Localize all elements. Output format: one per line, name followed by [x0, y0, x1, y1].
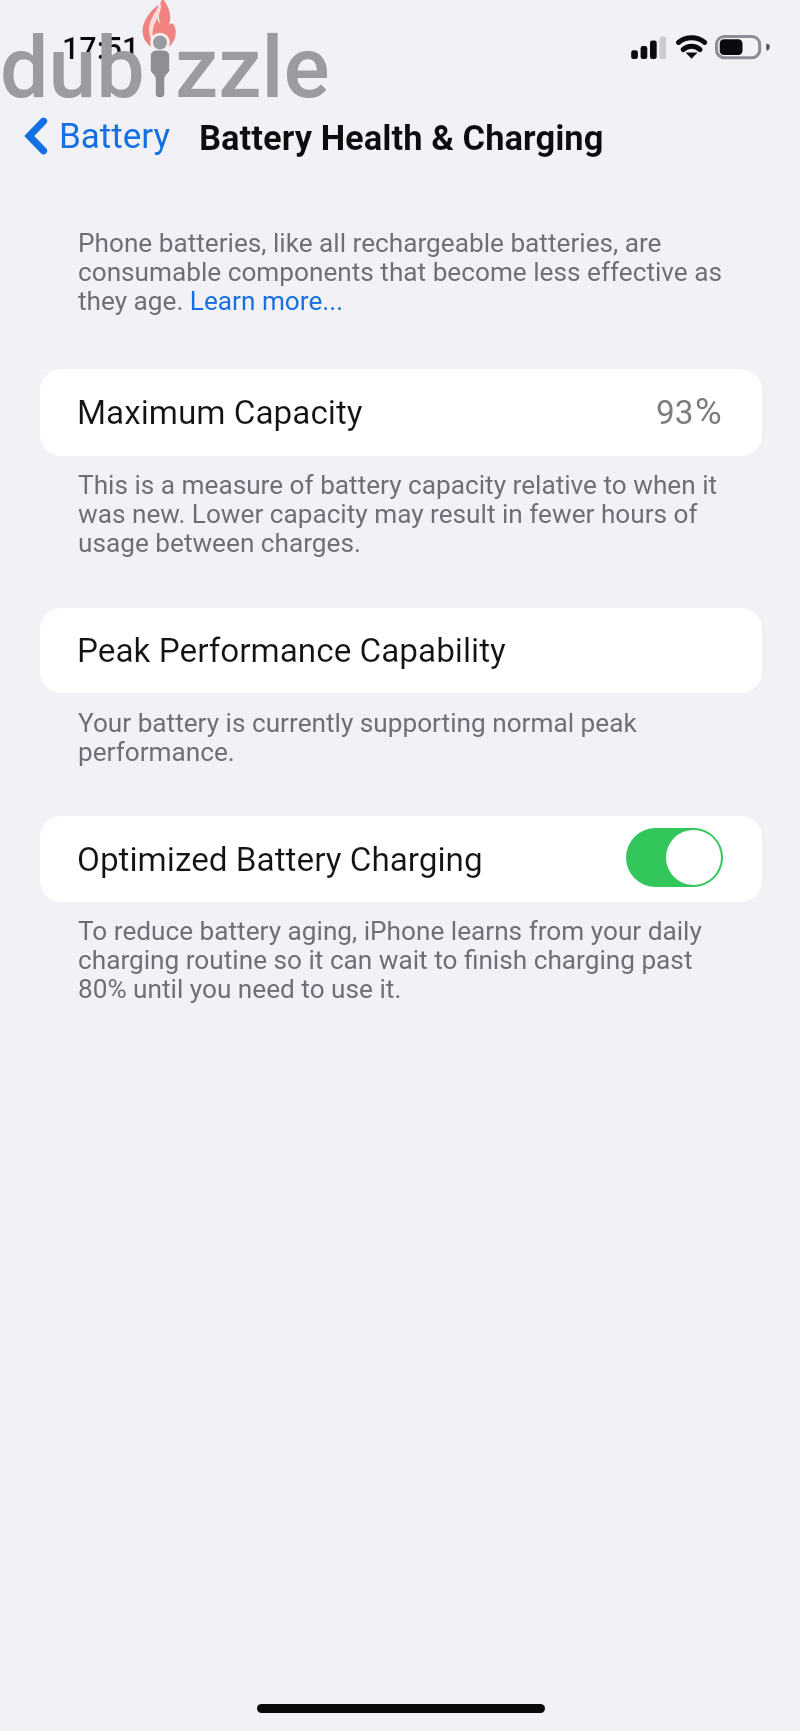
staticText: Optimized Battery Charging — [77, 840, 483, 879]
staticText: This is a measure of battery capacity re… — [78, 471, 728, 558]
staticText: Battery Health & Charging — [199, 118, 604, 159]
staticText: Phone batteries, like all rechargeable b… — [78, 229, 728, 316]
staticText: To reduce battery aging, iPhone learns f… — [78, 917, 728, 1004]
staticText: Peak Performance Capability — [77, 631, 506, 670]
staticText: Battery — [59, 116, 171, 157]
staticText: Maximum Capacity — [77, 393, 363, 432]
staticText: 17:51 — [62, 31, 140, 67]
staticText: Your battery is currently supporting nor… — [78, 709, 728, 767]
button[interactable]: Learn more about battery health — [190, 285, 344, 317]
button[interactable]: Optimized Battery Charging — [40, 816, 762, 902]
staticText: % — [695, 390, 722, 433]
staticText: dub — [0, 17, 145, 118]
staticText: zzle — [175, 17, 330, 118]
staticText: 93 — [656, 393, 694, 432]
button[interactable]: Peak Performance Capability — [40, 608, 762, 693]
button[interactable]: Maximum Capacity — [40, 369, 762, 456]
button[interactable]: Optimized Battery Charging toggle — [626, 828, 723, 887]
button[interactable]: Back to Battery — [20, 110, 171, 162]
